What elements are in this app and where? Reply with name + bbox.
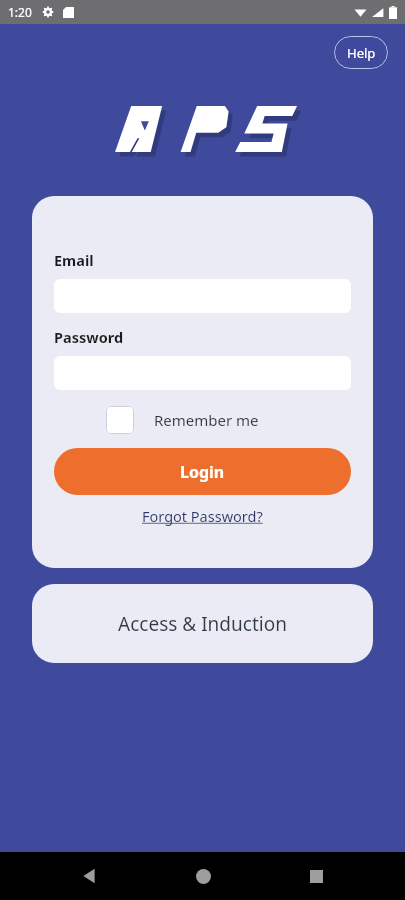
staticText: Email	[54, 250, 94, 270]
button[interactable]: Recent apps	[292, 852, 340, 900]
button[interactable]: Forgot Password?	[142, 506, 263, 526]
staticText: Forgot Password?	[142, 506, 263, 526]
staticText: Help	[347, 44, 376, 62]
staticText: Remember me	[154, 410, 259, 430]
button[interactable]: Access & Induction	[32, 584, 373, 663]
button[interactable]: Home	[179, 852, 227, 900]
staticText: Access & Induction	[118, 611, 287, 637]
button[interactable]: Login	[54, 448, 351, 495]
staticText: Login	[180, 461, 225, 483]
button[interactable]: Remember me	[106, 406, 259, 434]
staticText: Password	[54, 327, 124, 347]
button[interactable]: Help	[334, 36, 388, 69]
button[interactable]: Back	[65, 852, 113, 900]
staticText: 1:20	[8, 4, 32, 20]
